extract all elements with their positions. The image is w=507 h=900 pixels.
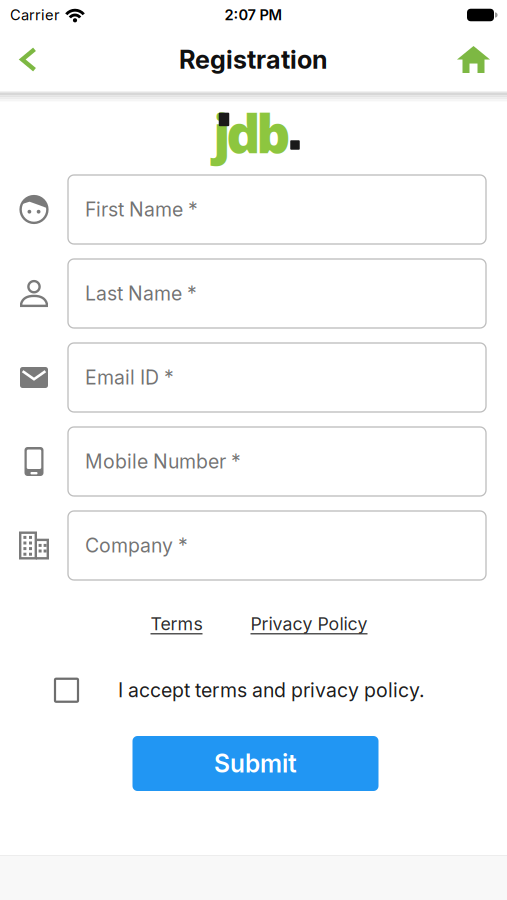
staticText: Mobile Number * [85,450,241,473]
staticText: Privacy Policy [250,613,367,634]
staticText: Email ID * [85,366,174,389]
staticText: Last Name * [85,282,197,305]
button[interactable]: Last Name * [68,259,486,328]
button[interactable]: I accept terms and privacy policy [55,679,78,702]
staticText: 2:07 PM [224,6,282,24]
staticText: Registration [179,44,328,75]
button[interactable]: Email ID * [68,343,486,412]
staticText: Terms [150,613,202,634]
button[interactable]: Back [0,47,37,71]
staticText: First Name * [85,198,198,221]
staticText: I accept terms and privacy policy. [118,678,425,702]
button[interactable]: Company * [68,511,486,580]
staticText: jdb [213,96,290,169]
button[interactable]: Privacy Policy [250,613,367,634]
staticText: Submit [214,749,297,778]
button[interactable]: Home [457,46,507,73]
button[interactable]: Terms [150,613,202,634]
button[interactable]: Submit [132,736,378,791]
button[interactable]: Mobile Number * [68,427,486,496]
staticText: Company * [85,534,188,557]
staticText: Carrier [10,6,60,24]
button[interactable]: First Name * [68,175,486,244]
